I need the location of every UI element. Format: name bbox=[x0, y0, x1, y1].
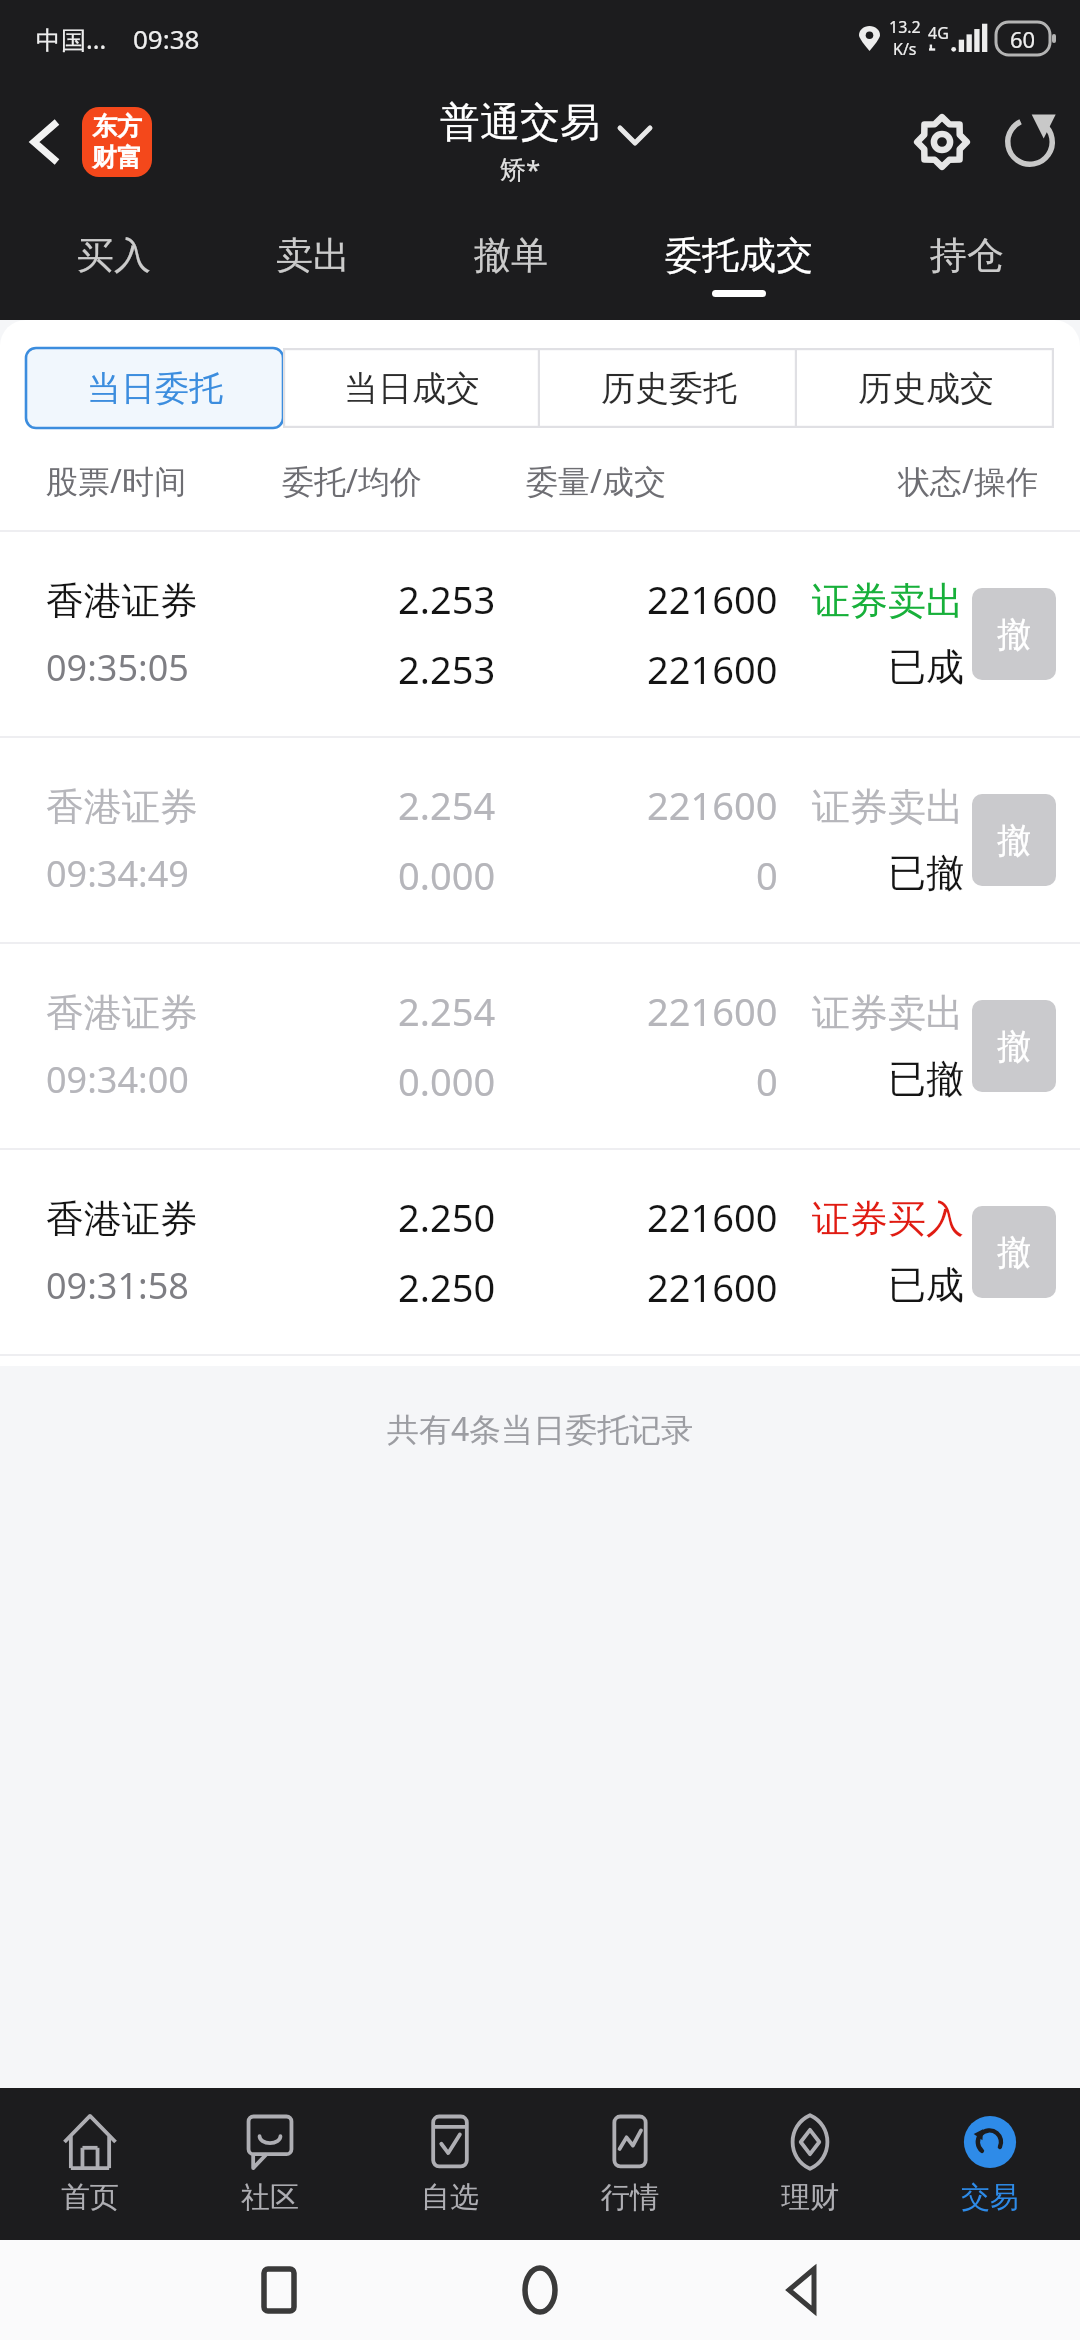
staticText: 09:34:49 bbox=[46, 849, 189, 898]
button[interactable]: 历史成交 bbox=[797, 348, 1054, 428]
staticText: 0.000 bbox=[398, 1055, 496, 1107]
staticText: 共有4条当日委托记录 bbox=[387, 1407, 694, 1451]
staticText: 当日成交 bbox=[344, 367, 480, 410]
staticText: 委托成交 bbox=[665, 232, 813, 279]
staticText: 已撤 bbox=[888, 1055, 964, 1103]
staticText: 股票/时间 bbox=[46, 459, 282, 503]
button[interactable]: Settings bbox=[902, 102, 982, 182]
staticText: 221600 bbox=[647, 985, 778, 1037]
staticText: 2.254 bbox=[398, 779, 496, 831]
button[interactable]: 撤 bbox=[972, 1000, 1056, 1092]
staticText: 买入 bbox=[77, 232, 151, 279]
staticText: 状态/操作 bbox=[898, 459, 1038, 503]
staticText: 矫* bbox=[500, 151, 541, 187]
staticText: 中国... bbox=[36, 22, 107, 56]
staticText: 已成 bbox=[888, 643, 964, 691]
staticText: 证券卖出 bbox=[812, 989, 964, 1037]
staticText: 221600 bbox=[647, 573, 778, 625]
button[interactable]: 持仓 bbox=[868, 208, 1066, 320]
button[interactable]: 历史委托 bbox=[540, 348, 797, 428]
staticText: 香港证券 bbox=[46, 1195, 198, 1243]
staticText: 0 bbox=[756, 1055, 778, 1107]
staticText: 撤单 bbox=[474, 232, 548, 279]
staticText: 香港证券 bbox=[46, 783, 198, 831]
button[interactable]: East Money logo bbox=[82, 107, 152, 177]
staticText: 卖出 bbox=[276, 232, 350, 279]
staticText: 自选 bbox=[421, 2179, 479, 2216]
staticText: 历史委托 bbox=[601, 367, 737, 410]
staticText: 当日委托 bbox=[87, 367, 223, 410]
staticText: 撤 bbox=[997, 819, 1031, 862]
button[interactable]: 撤单 bbox=[412, 208, 610, 320]
staticText: 2.250 bbox=[398, 1191, 496, 1243]
button[interactable]: 撤 bbox=[972, 1206, 1056, 1298]
staticText: K/s bbox=[893, 38, 917, 60]
button[interactable]: Refresh bbox=[990, 102, 1070, 182]
staticText: 2.253 bbox=[398, 643, 496, 695]
button[interactable]: 交易 bbox=[900, 2088, 1080, 2240]
staticText: 证券卖出 bbox=[812, 783, 964, 831]
staticText: 09:34:00 bbox=[46, 1055, 189, 1104]
button[interactable]: 香港证券 bbox=[0, 532, 1080, 736]
button[interactable]: 香港证券 bbox=[0, 1150, 1080, 1354]
staticText: 证券买入 bbox=[812, 1195, 964, 1243]
staticText: 09:31:58 bbox=[46, 1261, 189, 1310]
staticText: 撤 bbox=[997, 1231, 1031, 1274]
staticText: 交易 bbox=[961, 2179, 1019, 2216]
button[interactable]: 买入 bbox=[14, 208, 213, 320]
staticText: 行情 bbox=[601, 2179, 659, 2216]
staticText: 证券卖出 bbox=[812, 577, 964, 625]
staticText: 委量/成交 bbox=[526, 459, 898, 503]
staticText: 首页 bbox=[61, 2179, 119, 2216]
staticText: 221600 bbox=[647, 779, 778, 831]
staticText: 撤 bbox=[997, 613, 1031, 656]
button[interactable]: 当日成交 bbox=[283, 348, 540, 428]
staticText: 221600 bbox=[647, 1191, 778, 1243]
staticText: 撤 bbox=[997, 1025, 1031, 1068]
button[interactable]: 香港证券 bbox=[0, 738, 1080, 942]
button[interactable]: Home bbox=[497, 2247, 583, 2333]
button[interactable]: 香港证券 bbox=[0, 944, 1080, 1148]
staticText: 2.253 bbox=[398, 573, 496, 625]
staticText: 香港证券 bbox=[46, 577, 198, 625]
staticText: 2.250 bbox=[398, 1261, 496, 1313]
staticText: 09:35:05 bbox=[46, 643, 189, 692]
button[interactable]: 社区 bbox=[180, 2088, 360, 2240]
staticText: 已撤 bbox=[888, 849, 964, 897]
staticText: 财富 bbox=[92, 142, 142, 173]
staticText: 60 bbox=[1010, 24, 1036, 54]
button[interactable]: 卖出 bbox=[213, 208, 412, 320]
button[interactable]: 普通交易 bbox=[440, 97, 652, 187]
staticText: 东方 bbox=[92, 111, 142, 142]
button[interactable]: 行情 bbox=[540, 2088, 720, 2240]
staticText: 221600 bbox=[647, 1261, 778, 1313]
staticText: 委托/均价 bbox=[282, 459, 526, 503]
staticText: 香港证券 bbox=[46, 989, 198, 1037]
staticText: 0 bbox=[756, 849, 778, 901]
staticText: 持仓 bbox=[930, 232, 1004, 279]
button[interactable]: 当日委托 bbox=[26, 348, 283, 428]
staticText: 221600 bbox=[647, 643, 778, 695]
staticText: 已成 bbox=[888, 1261, 964, 1309]
button[interactable]: Recents bbox=[236, 2247, 322, 2333]
staticText: 13.2 bbox=[889, 16, 921, 38]
staticText: 2.254 bbox=[398, 985, 496, 1037]
button[interactable]: 首页 bbox=[0, 2088, 180, 2240]
button[interactable]: 撤 bbox=[972, 794, 1056, 886]
button[interactable]: Back bbox=[6, 104, 82, 180]
staticText: 历史成交 bbox=[858, 367, 994, 410]
button[interactable]: 理财 bbox=[720, 2088, 900, 2240]
button[interactable]: 撤 bbox=[972, 588, 1056, 680]
staticText: 09:38 bbox=[133, 21, 200, 56]
staticText: 普通交易 bbox=[440, 97, 600, 147]
button[interactable]: Back bbox=[758, 2247, 844, 2333]
staticText: 社区 bbox=[241, 2179, 299, 2216]
staticText: 0.000 bbox=[398, 849, 496, 901]
button[interactable]: 委托成交 bbox=[610, 208, 868, 320]
button[interactable]: 自选 bbox=[360, 2088, 540, 2240]
staticText: 4G bbox=[928, 22, 949, 44]
staticText: 理财 bbox=[781, 2179, 839, 2216]
